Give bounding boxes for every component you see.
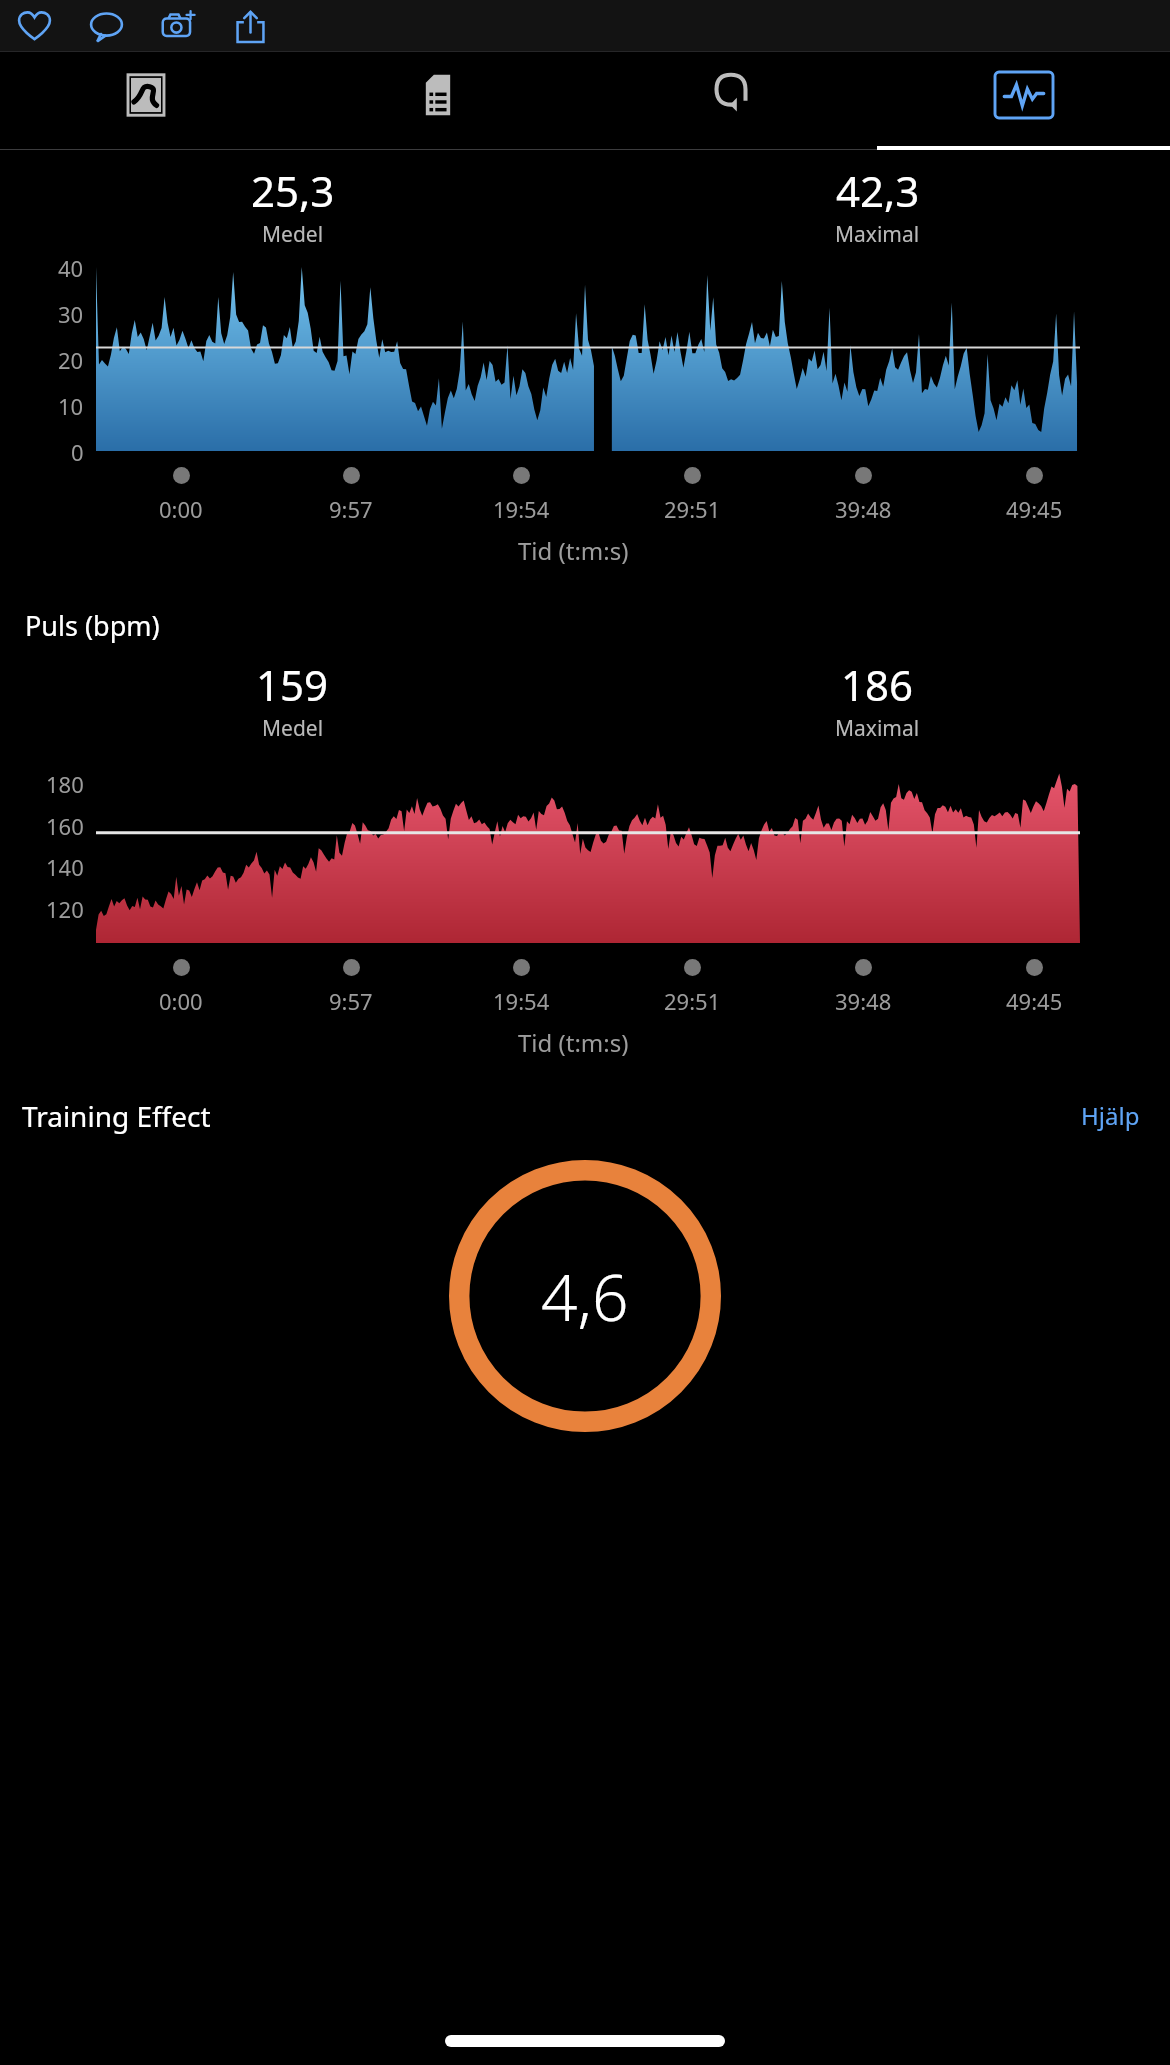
staticText: 25,3: [251, 162, 335, 219]
button[interactable]: Like: [10, 2, 58, 50]
staticText: 29:51: [664, 494, 721, 524]
staticText: 29:51: [664, 986, 721, 1016]
button[interactable]: 25,3: [0, 162, 585, 249]
staticText: 49:45: [1006, 494, 1063, 524]
button[interactable]: [96, 765, 1080, 943]
staticText: Tid (t:m:s): [518, 534, 629, 567]
staticText: 180: [46, 769, 84, 799]
button[interactable]: Add photo: [154, 2, 202, 50]
staticText: 10: [58, 391, 84, 421]
staticText: 159: [256, 656, 329, 713]
staticText: 0: [71, 437, 84, 467]
staticText: Medel: [262, 714, 324, 743]
staticText: Tid (t:m:s): [518, 1026, 629, 1059]
button[interactable]: 186: [585, 656, 1170, 743]
staticText: 39:48: [835, 494, 892, 524]
button[interactable]: Charts: [877, 52, 1170, 150]
staticText: Maximal: [835, 714, 920, 743]
staticText: 0:00: [159, 494, 203, 524]
staticText: 140: [46, 852, 84, 882]
button[interactable]: Laps: [584, 52, 877, 150]
button[interactable]: 42,3: [585, 162, 1170, 249]
staticText: Training Effect: [22, 1097, 211, 1135]
staticText: Puls (bpm): [25, 607, 160, 644]
staticText: 0:00: [159, 986, 203, 1016]
button[interactable]: Comment: [82, 2, 130, 50]
staticText: 30: [58, 299, 84, 329]
staticText: 186: [841, 656, 914, 713]
staticText: 49:45: [1006, 986, 1063, 1016]
staticText: 120: [46, 894, 84, 924]
button[interactable]: Map: [0, 52, 292, 150]
staticText: 42,3: [836, 162, 920, 219]
button[interactable]: Training Effect 4,6: [449, 1160, 721, 1432]
button[interactable]: Share: [226, 2, 274, 50]
staticText: 9:57: [329, 986, 373, 1016]
staticText: 39:48: [835, 986, 892, 1016]
staticText: 19:54: [493, 986, 550, 1016]
staticText: 9:57: [329, 494, 373, 524]
button[interactable]: 159: [0, 656, 585, 743]
button[interactable]: Details: [292, 52, 584, 150]
staticText: 20: [58, 345, 84, 375]
staticText: Maximal: [835, 220, 920, 249]
staticText: 19:54: [493, 494, 550, 524]
button[interactable]: Hjälp: [1073, 1091, 1148, 1140]
staticText: 40: [58, 253, 84, 283]
staticText: Medel: [262, 220, 324, 249]
button[interactable]: [96, 267, 1080, 451]
staticText: Hjälp: [1081, 1099, 1140, 1132]
staticText: 4,6: [541, 1253, 629, 1340]
staticText: 160: [46, 811, 84, 841]
